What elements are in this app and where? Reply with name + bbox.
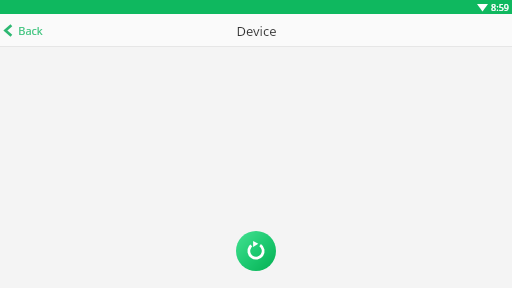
button[interactable]: Reset device [236,231,276,271]
staticText: Device [236,22,277,40]
staticText: Back [18,23,43,38]
button[interactable]: Back [0,14,53,47]
staticText: 8:59 [491,1,509,13]
